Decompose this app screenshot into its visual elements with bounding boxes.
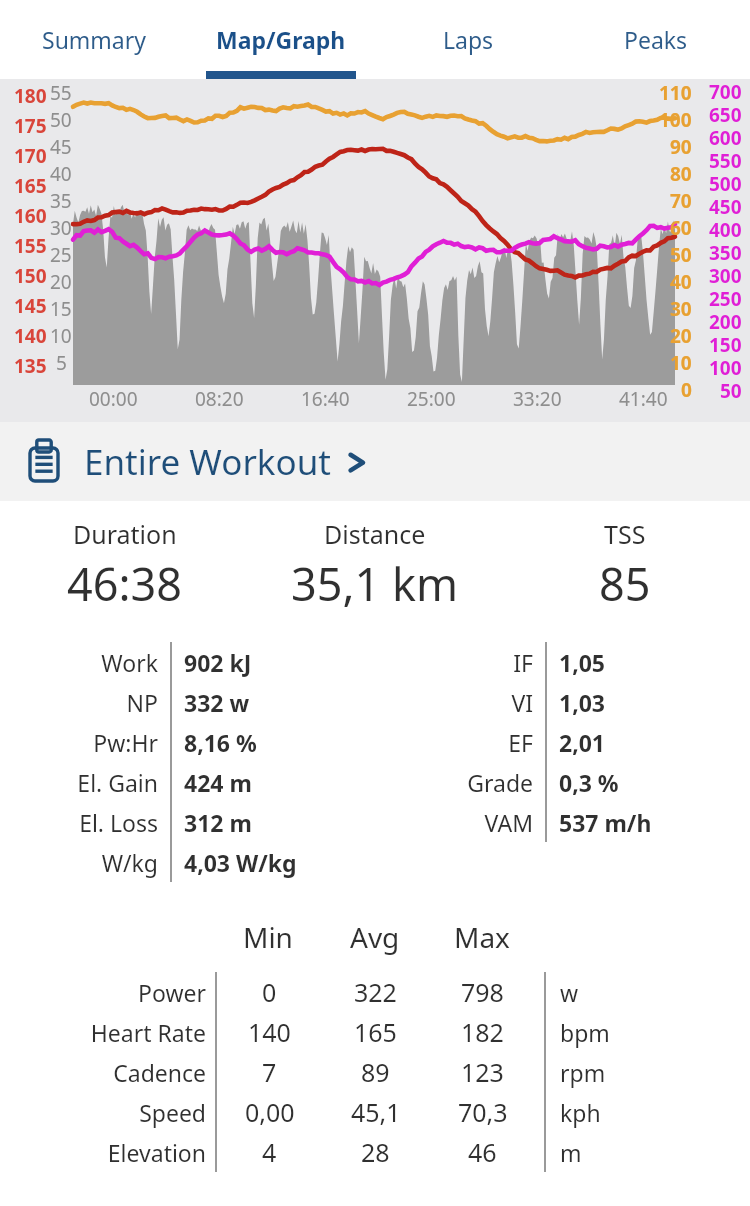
staticText: Distance	[324, 517, 426, 551]
staticText: 1,03	[559, 687, 606, 718]
staticText: 20	[50, 269, 72, 295]
staticText: 150	[14, 263, 47, 289]
staticText: 46	[468, 1135, 497, 1169]
staticText: 175	[14, 113, 47, 139]
staticText: 140	[248, 1015, 291, 1049]
staticText: 650	[709, 102, 742, 125]
staticText: Work	[101, 647, 158, 678]
staticText: El. Loss	[79, 807, 158, 838]
staticText: Max	[454, 918, 510, 956]
staticText: kph	[560, 1097, 601, 1128]
button[interactable]: Entire Workout	[0, 422, 750, 501]
staticText: 45	[50, 134, 72, 160]
staticText: 798	[461, 975, 504, 1009]
staticText: 1,05	[559, 647, 606, 678]
staticText: 700	[709, 79, 742, 102]
staticText: 50	[670, 242, 692, 268]
button[interactable]: Map/Graph	[187, 0, 374, 79]
staticText: 902 kJ	[184, 647, 252, 678]
staticText: VI	[511, 687, 533, 718]
staticText: 550	[709, 148, 742, 171]
staticText: 85	[599, 553, 651, 614]
staticText: 00:00	[89, 386, 138, 412]
staticText: 135	[14, 353, 47, 379]
staticText: Map/Graph	[216, 24, 346, 55]
staticText: 0	[262, 975, 277, 1009]
staticText: 8,16 %	[184, 727, 257, 758]
staticText: 140	[14, 323, 47, 349]
staticText: 160	[14, 203, 47, 229]
staticText: VAM	[484, 807, 533, 838]
staticText: Duration	[73, 517, 177, 551]
staticText: El. Gain	[77, 767, 158, 798]
staticText: 30	[50, 215, 72, 241]
staticText: Elevation	[107, 1137, 206, 1168]
staticText: 20	[670, 323, 692, 349]
staticText: 312 m	[184, 807, 252, 838]
staticText: EF	[508, 727, 533, 758]
staticText: 155	[14, 233, 47, 259]
staticText: 35	[50, 188, 72, 214]
staticText: Power	[138, 977, 206, 1008]
staticText: 182	[461, 1015, 504, 1049]
staticText: IF	[513, 647, 533, 678]
staticText: 55	[50, 80, 72, 106]
staticText: m	[560, 1137, 582, 1168]
staticText: 90	[670, 134, 692, 160]
staticText: 70	[670, 188, 692, 214]
staticText: 70,3	[458, 1095, 508, 1129]
staticText: Cadence	[113, 1057, 206, 1088]
staticText: Summary	[42, 24, 146, 55]
staticText: Pw:Hr	[93, 727, 158, 758]
staticText: 10	[670, 350, 692, 376]
staticText: 200	[709, 309, 742, 332]
staticText: 46:38	[67, 553, 183, 614]
staticText: Laps	[443, 24, 494, 55]
staticText: 80	[670, 161, 692, 187]
staticText: 28	[361, 1135, 390, 1169]
staticText: 7	[262, 1055, 277, 1089]
staticText: 40	[670, 269, 692, 295]
staticText: 0,3 %	[559, 767, 619, 798]
staticText: 0,00	[245, 1095, 295, 1129]
staticText: Grade	[467, 767, 533, 798]
staticText: 08:20	[195, 386, 244, 412]
staticText: 145	[14, 293, 47, 319]
button[interactable]: Summary	[0, 0, 187, 79]
staticText: 40	[50, 161, 72, 187]
staticText: 5	[56, 350, 67, 376]
staticText: W/kg	[101, 847, 158, 878]
staticText: 100	[659, 107, 692, 133]
staticText: 123	[461, 1055, 504, 1089]
staticText: 4,03 W/kg	[184, 847, 297, 878]
staticText: 350	[709, 240, 742, 263]
staticText: 150	[709, 332, 742, 355]
staticText: 180	[14, 83, 47, 109]
staticText: Heart Rate	[90, 1017, 206, 1048]
staticText: w	[560, 977, 579, 1008]
staticText: 15	[50, 296, 72, 322]
staticText: Peaks	[624, 24, 688, 55]
staticText: 250	[709, 286, 742, 309]
staticText: Avg	[350, 918, 400, 956]
staticText: 33:20	[513, 386, 562, 412]
button[interactable]: Laps	[374, 0, 562, 79]
staticText: 2,01	[559, 727, 606, 758]
staticText: NP	[126, 687, 158, 718]
staticText: 165	[354, 1015, 397, 1049]
staticText: 25:00	[407, 386, 456, 412]
staticText: rpm	[560, 1057, 606, 1088]
staticText: 41:40	[619, 386, 668, 412]
staticText: 35,1 km	[291, 553, 459, 614]
staticText: 0	[681, 377, 692, 403]
staticText: 50	[50, 107, 72, 133]
button[interactable]: Peaks	[562, 0, 750, 79]
staticText: 50	[720, 378, 742, 401]
staticText: Speed	[139, 1097, 206, 1128]
staticText: bpm	[560, 1017, 610, 1048]
staticText: 170	[14, 143, 47, 169]
staticText: 424 m	[184, 767, 252, 798]
staticText: 16:40	[301, 386, 350, 412]
staticText: 10	[50, 323, 72, 349]
staticText: TSS	[604, 517, 646, 551]
